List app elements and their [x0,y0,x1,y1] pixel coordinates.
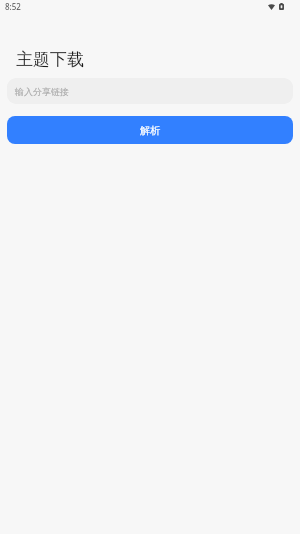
staticText: 解析 [140,124,161,137]
other: Battery level [279,3,284,10]
button[interactable]: 解析 [7,116,293,144]
button[interactable]: 输入分享链接 [7,78,293,104]
staticText: 输入分享链接 [15,86,69,97]
other: Wi-Fi signal [268,4,275,10]
staticText: 8:52 [5,1,21,12]
staticText: 主题下载 [16,49,84,70]
